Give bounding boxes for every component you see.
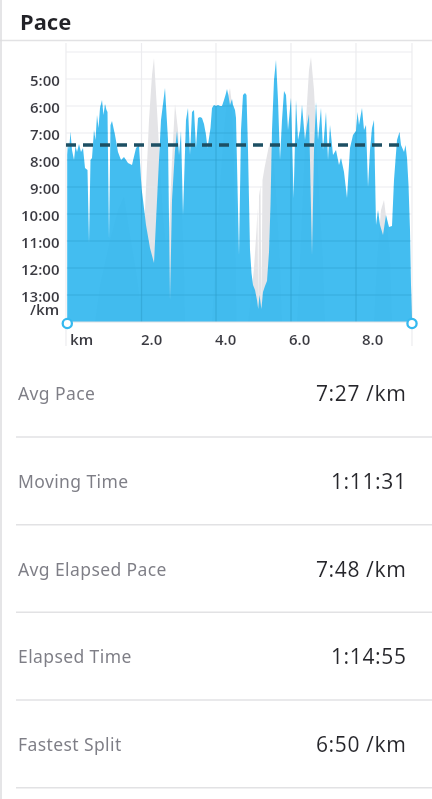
staticText: 7:48 /km [316,555,407,584]
staticText: 10:00 [21,205,60,225]
staticText: km [70,329,94,349]
staticText: 1:11:31 [331,467,407,496]
staticText: Pace [20,6,72,36]
staticText: 2.0 [141,329,163,349]
staticText: /km [30,299,60,319]
staticText: 6:50 /km [316,730,407,759]
staticText: 8.0 [362,329,384,349]
button[interactable]: Avg Elapsed Pace [0,525,432,613]
staticText: Avg Pace [18,381,96,405]
staticText: Avg Elapsed Pace [18,557,167,581]
staticText: 5:00 [30,70,60,90]
staticText: 8:00 [30,151,60,171]
staticText: 6:00 [30,97,60,117]
staticText: 7:00 [30,124,60,144]
staticText: 13:00 [21,286,60,306]
staticText: Moving Time [18,469,129,493]
staticText: 1:14:55 [331,642,407,671]
staticText: 11:00 [21,232,60,252]
staticText: 4.0 [215,329,237,349]
staticText: 7:27 /km [316,379,407,408]
button[interactable]: Elapsed Time [0,612,432,700]
staticText: 12:00 [21,259,60,279]
button[interactable]: Fastest Split [0,700,432,788]
staticText: Elapsed Time [18,644,132,668]
staticText: Fastest Split [18,732,122,756]
staticText: 9:00 [30,178,60,198]
staticText: 6.0 [289,329,311,349]
button[interactable]: Avg Pace [0,349,432,437]
button[interactable]: Moving Time [0,437,432,525]
